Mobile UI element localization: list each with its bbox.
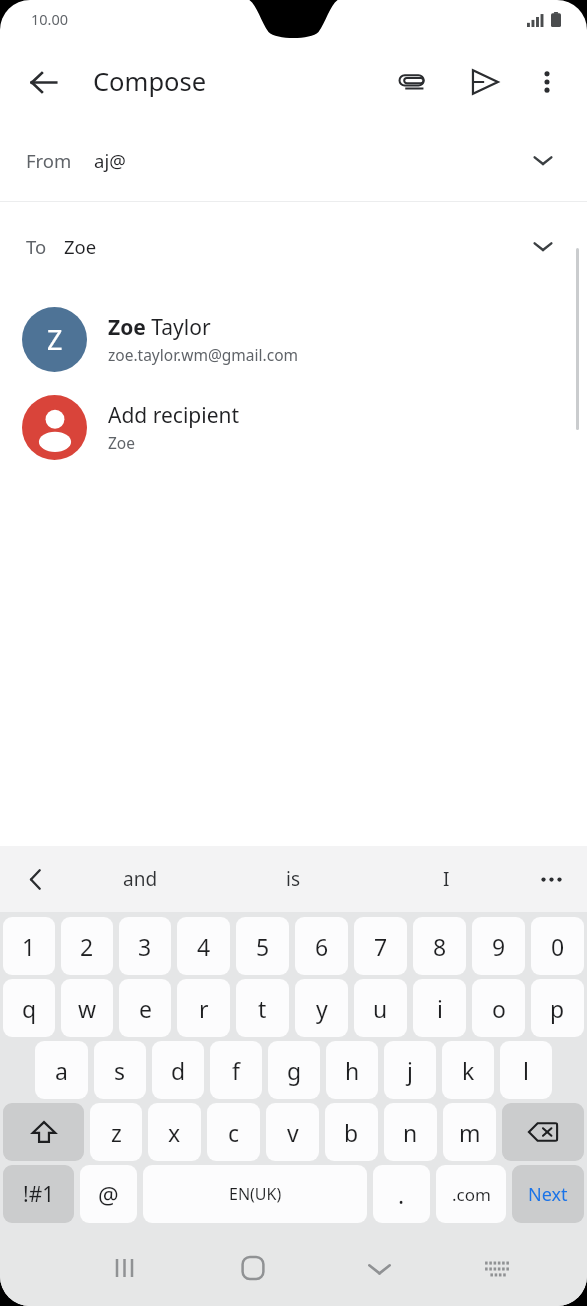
staticText: r xyxy=(199,993,209,1024)
button[interactable]: 6 xyxy=(295,917,348,975)
button[interactable]: c xyxy=(207,1103,260,1161)
button[interactable]: 3 xyxy=(119,917,171,975)
button[interactable]: l xyxy=(500,1041,552,1099)
button[interactable]: 0 xyxy=(531,917,584,975)
staticText: . xyxy=(398,1179,405,1210)
button[interactable]: . xyxy=(373,1165,430,1223)
button[interactable]: b xyxy=(325,1103,378,1161)
button[interactable]: o xyxy=(472,979,525,1037)
staticText: Compose xyxy=(93,64,207,99)
button[interactable]: From xyxy=(0,119,587,201)
staticText: and xyxy=(123,866,158,892)
staticText: @ xyxy=(98,1179,119,1210)
button[interactable]: d xyxy=(152,1041,204,1099)
button[interactable]: h xyxy=(326,1041,378,1099)
staticText: Add recipient xyxy=(108,401,240,430)
button[interactable]: 7 xyxy=(354,917,407,975)
button[interactable]: j xyxy=(384,1041,436,1099)
button[interactable]: f xyxy=(210,1041,262,1099)
staticText: l xyxy=(523,1055,529,1086)
staticText: g xyxy=(287,1055,302,1086)
button[interactable]: u xyxy=(354,979,407,1037)
staticText: 9 xyxy=(492,931,506,962)
staticText: q xyxy=(22,993,37,1024)
staticText: u xyxy=(373,993,388,1024)
button[interactable]: EN(UK) xyxy=(143,1165,367,1223)
staticText: I xyxy=(443,866,450,892)
staticText: y xyxy=(316,993,328,1024)
button[interactable]: z xyxy=(90,1103,142,1161)
button[interactable]: i xyxy=(413,979,466,1037)
button[interactable]: To xyxy=(0,202,587,290)
button[interactable]: 8 xyxy=(413,917,466,975)
button[interactable]: t xyxy=(236,979,289,1037)
button[interactable]: Add recipient xyxy=(0,390,587,464)
button[interactable]: 1 xyxy=(3,917,55,975)
button[interactable]: !#1 xyxy=(3,1165,74,1223)
button[interactable]: Show Cc and Bcc xyxy=(521,224,565,268)
staticText: v xyxy=(287,1117,299,1148)
staticText: f xyxy=(232,1055,240,1086)
staticText: 7 xyxy=(374,931,388,962)
button[interactable]: w xyxy=(61,979,113,1037)
button[interactable]: 2 xyxy=(61,917,113,975)
button[interactable]: n xyxy=(384,1103,437,1161)
button[interactable]: Choose sender account xyxy=(521,138,565,182)
button[interactable]: More options xyxy=(523,58,571,106)
staticText: b xyxy=(344,1117,359,1148)
button[interactable]: @ xyxy=(80,1165,137,1223)
button[interactable]: More suggestions xyxy=(527,855,575,903)
button[interactable]: Hide keyboard xyxy=(316,1230,443,1306)
button[interactable]: 5 xyxy=(236,917,289,975)
button[interactable]: Back xyxy=(17,56,69,108)
button[interactable]: v xyxy=(266,1103,319,1161)
staticText: z xyxy=(111,1117,122,1148)
button[interactable]: x xyxy=(148,1103,201,1161)
staticText: t xyxy=(258,993,267,1024)
staticText: w xyxy=(78,993,97,1024)
button[interactable]: q xyxy=(3,979,55,1037)
staticText: n xyxy=(403,1117,418,1148)
button[interactable]: Switch keyboard xyxy=(443,1230,551,1306)
staticText: From xyxy=(26,148,72,173)
staticText: e xyxy=(139,993,152,1024)
staticText: p xyxy=(550,993,565,1024)
button[interactable]: Home xyxy=(189,1230,316,1306)
button[interactable]: r xyxy=(177,979,230,1037)
staticText: 8 xyxy=(433,931,447,962)
button[interactable]: Shift xyxy=(3,1103,84,1161)
button[interactable]: Attach file xyxy=(388,58,436,106)
button[interactable]: and xyxy=(64,846,217,912)
button[interactable]: a xyxy=(35,1041,88,1099)
staticText: 6 xyxy=(315,931,329,962)
button[interactable]: p xyxy=(531,979,584,1037)
button[interactable]: e xyxy=(119,979,171,1037)
button[interactable]: m xyxy=(443,1103,496,1161)
button[interactable]: Previous suggestions xyxy=(12,855,60,903)
button[interactable]: g xyxy=(268,1041,320,1099)
button[interactable]: s xyxy=(94,1041,146,1099)
staticText: a xyxy=(55,1055,68,1086)
button[interactable]: 4 xyxy=(177,917,230,975)
button[interactable]: Recent apps xyxy=(62,1230,189,1306)
staticText: .com xyxy=(452,1183,491,1206)
button[interactable]: I xyxy=(370,846,523,912)
button[interactable]: 9 xyxy=(472,917,525,975)
staticText: Zoe xyxy=(108,432,135,453)
staticText: j xyxy=(407,1055,413,1086)
button[interactable]: .com xyxy=(436,1165,506,1223)
button[interactable]: is xyxy=(217,846,370,912)
button[interactable]: Send xyxy=(461,58,509,106)
staticText: 0 xyxy=(551,931,565,962)
button[interactable]: k xyxy=(442,1041,494,1099)
button[interactable]: y xyxy=(295,979,348,1037)
staticText: 2 xyxy=(80,931,94,962)
button[interactable]: Next xyxy=(512,1165,584,1223)
staticText: 10.00 xyxy=(31,9,69,29)
button[interactable]: Z xyxy=(0,302,587,376)
staticText: !#1 xyxy=(23,1180,55,1209)
staticText: Zoe Taylor xyxy=(108,313,211,342)
button[interactable]: Backspace xyxy=(502,1103,584,1161)
staticText: 5 xyxy=(256,931,270,962)
staticText: 3 xyxy=(138,931,152,962)
